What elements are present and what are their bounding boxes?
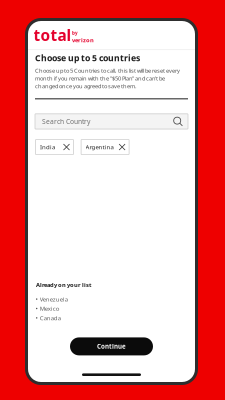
staticText: Venezuela [40, 295, 68, 303]
staticText: Choose up to 5 countries [35, 52, 140, 64]
staticText: verizon [72, 36, 94, 44]
staticText: total [33, 24, 71, 45]
button[interactable]: Search Country [35, 114, 188, 129]
button[interactable]: India [35, 139, 73, 154]
staticText: Mexico [40, 304, 60, 313]
staticText: India [40, 143, 55, 151]
staticText: Canada [40, 314, 61, 322]
staticText: Continue [97, 342, 126, 351]
button[interactable]: Continue [70, 337, 153, 355]
button[interactable]: Argentina [81, 139, 129, 154]
staticText: Argentina [86, 143, 114, 151]
staticText: Choose up to 5 Countries to call, this l… [35, 67, 180, 90]
staticText: Search Country [42, 117, 90, 126]
staticText: by [72, 30, 78, 36]
staticText: Already on your list [36, 281, 91, 289]
